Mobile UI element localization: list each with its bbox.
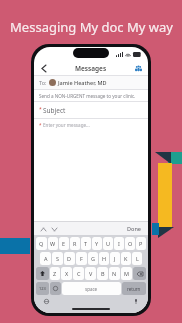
- staticText: M: [124, 270, 129, 277]
- staticText: To:: [39, 79, 47, 86]
- button[interactable]: Emoji: [50, 282, 61, 295]
- staticText: X: [65, 270, 69, 277]
- staticText: T: [84, 240, 88, 247]
- staticText: L: [136, 255, 139, 262]
- button[interactable]: return: [122, 282, 146, 295]
- staticText: G: [91, 255, 96, 262]
- staticText: D: [67, 255, 72, 262]
- button[interactable]: Y: [92, 237, 102, 250]
- staticText: I: [118, 240, 120, 247]
- button[interactable]: Backspace: [133, 267, 146, 280]
- staticText: Subject: [43, 106, 66, 115]
- button[interactable]: S: [52, 252, 63, 265]
- staticText: B: [101, 270, 105, 277]
- staticText: H: [102, 255, 107, 262]
- button[interactable]: Next field: [50, 225, 58, 233]
- button[interactable]: B: [97, 267, 108, 280]
- button[interactable]: J: [110, 252, 120, 265]
- button[interactable]: D: [64, 252, 75, 265]
- staticText: Send a NON-URGENT message to your clinic…: [39, 93, 136, 99]
- staticText: Y: [95, 240, 99, 247]
- button[interactable]: H: [99, 252, 109, 265]
- button[interactable]: I: [114, 237, 124, 250]
- staticText: Z: [53, 270, 57, 277]
- button[interactable]: Done: [125, 223, 143, 234]
- button[interactable]: C: [73, 267, 84, 280]
- button[interactable]: W: [48, 237, 58, 250]
- button[interactable]: Numbers: [36, 282, 49, 295]
- button[interactable]: P: [136, 237, 146, 250]
- staticText: Messaging My doc My way: [10, 18, 173, 36]
- button[interactable]: Back: [39, 63, 49, 73]
- button[interactable]: A: [40, 252, 51, 265]
- staticText: Q: [39, 240, 44, 247]
- button[interactable]: space: [62, 282, 121, 295]
- button[interactable]: M: [121, 267, 132, 280]
- button[interactable]: O: [125, 237, 135, 250]
- staticText: S: [56, 255, 60, 262]
- staticText: O: [128, 240, 133, 247]
- staticText: A: [44, 255, 48, 262]
- staticText: 123: [39, 286, 46, 291]
- button[interactable]: G: [88, 252, 98, 265]
- button[interactable]: F: [76, 252, 87, 265]
- staticText: F: [80, 255, 83, 262]
- button[interactable]: *: [34, 119, 148, 221]
- staticText: P: [139, 240, 143, 247]
- button[interactable]: Contacts: [133, 63, 143, 73]
- staticText: N: [112, 270, 117, 277]
- staticText: space: [85, 286, 98, 292]
- staticText: *: [39, 122, 42, 128]
- button[interactable]: Previous field: [39, 225, 47, 233]
- button[interactable]: Z: [50, 267, 60, 280]
- button[interactable]: N: [109, 267, 120, 280]
- button[interactable]: Q: [36, 237, 47, 250]
- button[interactable]: L: [132, 252, 142, 265]
- staticText: K: [124, 255, 128, 262]
- staticText: Messages: [75, 64, 107, 73]
- staticText: J: [114, 255, 116, 262]
- staticText: Jamie Heather, MD: [58, 79, 107, 86]
- button[interactable]: Shift: [36, 267, 49, 280]
- staticText: *: [39, 106, 42, 113]
- button[interactable]: To:: [34, 76, 148, 89]
- staticText: return: [127, 286, 141, 292]
- button[interactable]: V: [85, 267, 96, 280]
- button[interactable]: X: [61, 267, 72, 280]
- button[interactable]: Switch keyboard: [36, 297, 56, 306]
- staticText: Done: [127, 225, 141, 232]
- staticText: U: [106, 240, 111, 247]
- button[interactable]: T: [81, 237, 91, 250]
- staticText: W: [50, 240, 56, 247]
- staticText: R: [73, 240, 77, 247]
- button[interactable]: E: [59, 237, 69, 250]
- button[interactable]: R: [70, 237, 80, 250]
- staticText: C: [77, 270, 81, 277]
- staticText: Enter your message...: [43, 122, 90, 128]
- button[interactable]: Dictation: [126, 297, 146, 306]
- button[interactable]: U: [103, 237, 113, 250]
- staticText: E: [62, 240, 66, 247]
- button[interactable]: K: [121, 252, 131, 265]
- staticText: V: [89, 270, 93, 277]
- button[interactable]: *: [34, 102, 148, 118]
